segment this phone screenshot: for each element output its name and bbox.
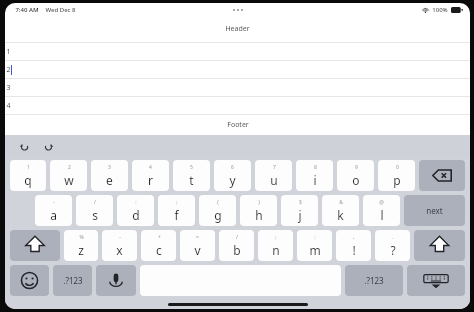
button[interactable]: ( <box>199 195 236 226</box>
button[interactable]: % <box>64 230 98 261</box>
button[interactable]: Emoji <box>10 265 49 296</box>
staticText: ! <box>352 242 356 258</box>
button[interactable]: 2 <box>5 61 470 78</box>
button[interactable]: - <box>102 230 137 261</box>
staticText: , <box>353 234 355 241</box>
staticText: 8 <box>314 164 317 171</box>
staticText: .?123 <box>364 275 384 286</box>
button[interactable]: Backspace <box>419 160 465 191</box>
staticText: g <box>214 207 222 223</box>
staticText: @ <box>379 199 384 206</box>
button[interactable]: 6 <box>214 160 251 191</box>
staticText: y <box>229 172 236 188</box>
staticText: s <box>92 207 98 223</box>
staticText: z <box>78 242 84 258</box>
staticText: % <box>79 234 84 241</box>
staticText: m <box>309 242 321 258</box>
button[interactable]: + <box>141 230 176 261</box>
button[interactable]: 4 <box>5 97 470 114</box>
staticText: ; <box>275 234 277 241</box>
staticText: - <box>119 234 121 241</box>
staticText: o <box>352 172 360 188</box>
button[interactable]: Hide keyboard <box>407 265 465 296</box>
staticText: 2 <box>68 164 71 171</box>
staticText: h <box>255 207 263 223</box>
staticText: ) <box>258 199 260 206</box>
staticText: 3 <box>6 83 11 93</box>
button[interactable]: .?123 <box>345 265 403 296</box>
button[interactable]: 3 <box>91 160 128 191</box>
staticText: Footer <box>227 120 249 130</box>
button[interactable]: 1 <box>10 160 46 191</box>
staticText: 5 <box>190 164 193 171</box>
button[interactable]: ) <box>240 195 277 226</box>
staticText: Wed Dec 8 <box>45 6 76 14</box>
button[interactable]: / <box>76 195 113 226</box>
button[interactable]: 4 <box>132 160 169 191</box>
staticText: $ <box>299 199 302 206</box>
staticText: next <box>426 205 443 216</box>
button[interactable]: Dictation <box>96 265 136 296</box>
staticText: 1 <box>6 47 11 57</box>
button[interactable]: : <box>297 230 332 261</box>
staticText: + <box>158 234 161 241</box>
button[interactable]: . <box>375 230 410 261</box>
staticText: f <box>174 207 179 223</box>
staticText: q <box>24 172 32 188</box>
button[interactable]: next <box>404 195 465 226</box>
staticText: : <box>135 199 137 206</box>
button[interactable]: : <box>117 195 154 226</box>
staticText: i <box>313 172 317 188</box>
staticText: e <box>106 172 113 188</box>
button[interactable]: Shift <box>10 230 60 261</box>
staticText: - <box>53 199 55 206</box>
button[interactable]: 2 <box>50 160 87 191</box>
button[interactable]: ; <box>158 195 195 226</box>
staticText: 3 <box>108 164 111 171</box>
button[interactable]: 9 <box>337 160 374 191</box>
button[interactable]: Shift <box>414 230 465 261</box>
staticText: 2 <box>6 65 11 75</box>
staticText: / <box>94 199 96 206</box>
staticText: 7:40 AM <box>15 6 39 14</box>
staticText: Header <box>225 24 250 34</box>
staticText: 4 <box>6 101 11 111</box>
button[interactable]: ; <box>258 230 293 261</box>
button[interactable]: @ <box>363 195 400 226</box>
staticText: b <box>233 242 241 258</box>
staticText: ; <box>176 199 178 206</box>
staticText: n <box>272 242 280 258</box>
staticText: t <box>189 172 194 188</box>
button[interactable]: 7 <box>255 160 292 191</box>
staticText: u <box>270 172 278 188</box>
staticText: ( <box>217 199 219 206</box>
button[interactable]: 0 <box>378 160 415 191</box>
staticText: & <box>339 199 343 206</box>
button[interactable]: = <box>180 230 215 261</box>
staticText: p <box>393 172 401 188</box>
button[interactable]: .?123 <box>53 265 92 296</box>
staticText: : <box>314 234 316 241</box>
button[interactable]: 3 <box>5 79 470 96</box>
button[interactable]: & <box>322 195 359 226</box>
staticText: ? <box>390 242 396 258</box>
button[interactable]: / <box>219 230 254 261</box>
staticText: 100% <box>432 6 448 14</box>
button[interactable]: $ <box>281 195 318 226</box>
button[interactable]: 8 <box>296 160 333 191</box>
button[interactable]: - <box>35 195 72 226</box>
button[interactable]: Redo <box>41 139 55 153</box>
staticText: 6 <box>231 164 234 171</box>
staticText: . <box>392 234 394 241</box>
staticText: v <box>194 242 201 258</box>
staticText: r <box>148 172 153 188</box>
staticText: 0 <box>396 164 399 171</box>
button[interactable]: Undo <box>17 139 31 153</box>
staticText: x <box>116 242 123 258</box>
staticText: l <box>380 207 384 223</box>
staticText: 1 <box>27 164 30 171</box>
button[interactable]: , <box>336 230 371 261</box>
button[interactable]: 5 <box>173 160 210 191</box>
